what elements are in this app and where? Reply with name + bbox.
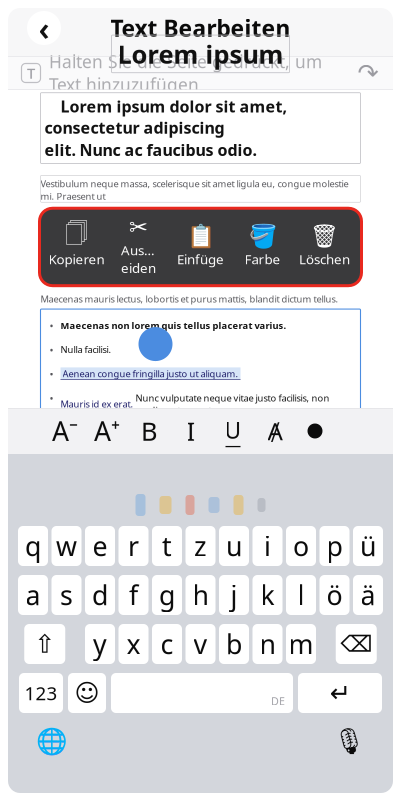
staticText: j xyxy=(230,577,237,613)
button[interactable]: j xyxy=(219,575,249,615)
button[interactable]: r xyxy=(118,526,148,566)
button[interactable]: Textfarbe xyxy=(296,409,334,453)
staticText: • xyxy=(49,343,53,357)
staticText: p xyxy=(326,528,342,564)
staticText: y xyxy=(93,626,107,662)
staticText: ▾ xyxy=(147,328,164,367)
button[interactable]: f xyxy=(118,575,148,615)
button[interactable]: A⁻ xyxy=(44,409,86,453)
staticText: x xyxy=(126,626,140,662)
button[interactable]: B xyxy=(128,409,170,453)
button[interactable]: a xyxy=(18,575,48,615)
button[interactable]: A⁺ xyxy=(86,409,128,453)
button[interactable]: 🗑 xyxy=(293,224,355,270)
staticText: Aus…eiden xyxy=(121,241,156,277)
staticText: Aenean congue fringilla justo ut aliquam… xyxy=(62,367,238,380)
button[interactable]: Wiederholen xyxy=(355,60,381,86)
button[interactable]: p xyxy=(319,526,349,566)
button[interactable]: Leerzeichen xyxy=(111,673,293,713)
staticText: b xyxy=(226,626,242,662)
button[interactable]: s xyxy=(51,575,81,615)
button[interactable]: 123 xyxy=(19,673,63,713)
button[interactable]: h xyxy=(185,575,215,615)
staticText: i xyxy=(264,528,271,564)
staticText: sagittis. xyxy=(62,419,94,432)
staticText: T xyxy=(27,63,35,83)
button[interactable]: n xyxy=(252,624,282,664)
button[interactable]: ä xyxy=(353,575,383,615)
staticText: w xyxy=(56,528,77,564)
staticText: Lorem ipsum xyxy=(117,37,283,71)
button[interactable]: v xyxy=(185,624,215,664)
staticText: m xyxy=(288,626,313,662)
button[interactable]: Zurück xyxy=(22,6,66,50)
staticText: g xyxy=(159,577,175,613)
button[interactable]: u xyxy=(219,526,249,566)
button[interactable]: y xyxy=(85,624,115,664)
staticText: t xyxy=(162,528,172,564)
button[interactable]: Unterstrichen xyxy=(212,409,254,453)
staticText: Nulla facilisi. xyxy=(60,343,111,356)
button[interactable]: ü xyxy=(353,526,383,566)
staticText: Lorem ipsum dolor sit amet, consectetur … xyxy=(44,96,287,138)
staticText: ☺ xyxy=(74,679,99,707)
button[interactable]: Diktieren xyxy=(327,719,371,763)
button[interactable]: Umschalt xyxy=(24,624,65,664)
staticText: Einfüge xyxy=(177,250,224,268)
button[interactable]: ö xyxy=(319,575,349,615)
staticText: ‹ xyxy=(38,7,49,49)
staticText: Morbi viverra semper lorem nec molestie. xyxy=(60,442,239,454)
staticText: Vestibulum neque massa, scelerisque sit … xyxy=(40,177,348,202)
button[interactable]: Kursiv xyxy=(170,409,212,453)
staticText: 🌐 xyxy=(36,726,68,755)
staticText: Mauris id ex erat. xyxy=(60,398,133,410)
staticText: u xyxy=(226,528,242,564)
staticText: r xyxy=(128,528,139,564)
staticText: Halten Sie die Seite gedrückt, um Text h… xyxy=(49,50,322,96)
staticText: Maecenas mauris lectus, lobortis et puru… xyxy=(40,293,338,305)
button[interactable]: b xyxy=(219,624,249,664)
button[interactable]: c xyxy=(152,624,182,664)
staticText: • xyxy=(49,442,53,456)
button[interactable]: o xyxy=(286,526,316,566)
button[interactable]: w xyxy=(51,526,81,566)
staticText: • xyxy=(49,319,53,333)
button[interactable]: ✂ xyxy=(107,215,169,279)
staticText: h xyxy=(192,577,208,613)
staticText: Ⱥ xyxy=(267,415,282,447)
button[interactable]: 🗍 xyxy=(45,224,107,270)
button[interactable]: x xyxy=(118,624,148,664)
staticText: v xyxy=(193,626,207,662)
staticText: ▾ xyxy=(67,421,84,460)
button[interactable]: m xyxy=(286,624,316,664)
button[interactable]: k xyxy=(252,575,282,615)
button[interactable]: t xyxy=(152,526,182,566)
staticText: q xyxy=(25,528,41,564)
button[interactable]: 📋 xyxy=(169,224,231,270)
button[interactable]: q xyxy=(18,526,48,566)
staticText: ⌫ xyxy=(340,631,372,657)
button[interactable]: 🪣 xyxy=(231,224,293,270)
staticText: a xyxy=(25,577,40,613)
button[interactable]: d xyxy=(85,575,115,615)
button[interactable]: Tastatur wechseln xyxy=(30,719,74,763)
staticText: 🪣 xyxy=(248,223,276,249)
staticText: o xyxy=(293,528,309,564)
button[interactable]: l xyxy=(286,575,316,615)
staticText: l xyxy=(297,577,304,613)
button[interactable]: i xyxy=(252,526,282,566)
button[interactable]: z xyxy=(185,526,215,566)
staticText: k xyxy=(260,577,274,613)
staticText: Kopieren xyxy=(48,250,104,268)
button[interactable]: Emoji xyxy=(68,673,106,713)
staticText: Maecenas non lorem quis tellus placerat … xyxy=(60,319,286,331)
button[interactable]: Löschen xyxy=(336,624,377,664)
button[interactable]: Eingabe xyxy=(298,673,382,713)
button[interactable]: e xyxy=(85,526,115,566)
staticText: U xyxy=(224,415,241,445)
button[interactable]: g xyxy=(152,575,182,615)
staticText: 🗑 xyxy=(310,223,339,249)
staticText: ö xyxy=(326,577,342,613)
button[interactable]: Ⱥ xyxy=(254,409,296,453)
staticText: 📋 xyxy=(186,223,214,249)
